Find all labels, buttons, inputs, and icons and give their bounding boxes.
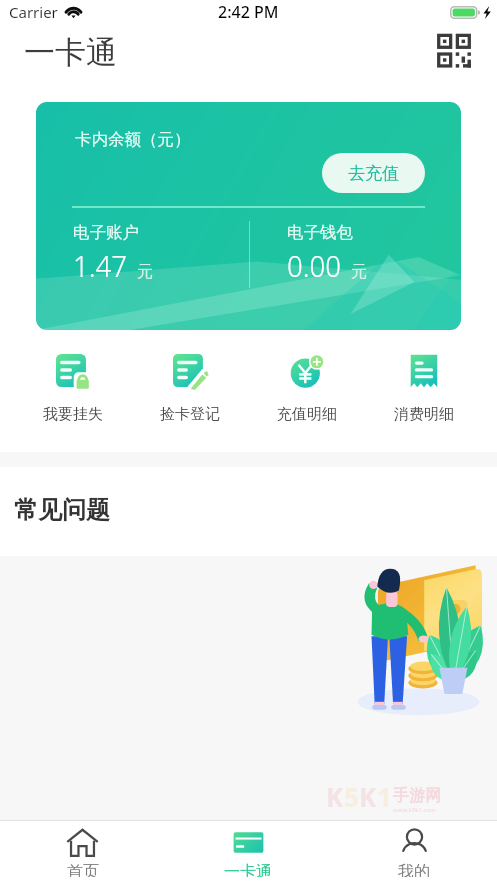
button[interactable]: 首页 xyxy=(0,821,165,883)
staticText: 去充值 xyxy=(348,163,399,184)
staticText: Carrier xyxy=(9,2,58,22)
staticText: 消费明细 xyxy=(394,405,454,424)
button[interactable]: 充值明细 xyxy=(263,354,351,424)
staticText: 元 xyxy=(351,262,367,282)
staticText: 充值明细 xyxy=(277,405,337,424)
staticText: 卡内余额（元） xyxy=(75,129,191,150)
button[interactable]: 卡内余额（元） xyxy=(36,102,461,330)
button[interactable]: 捡卡登记 xyxy=(146,354,234,424)
button[interactable]: 去充值 xyxy=(322,153,425,193)
button[interactable]: 我的 xyxy=(331,821,497,883)
staticText: 首页 xyxy=(67,862,99,877)
staticText: 电子账户 xyxy=(73,222,139,243)
staticText: 2:42 PM xyxy=(218,1,279,23)
staticText: 我的 xyxy=(398,862,430,877)
button[interactable]: 一卡通 xyxy=(165,821,331,883)
staticText: K xyxy=(326,779,344,814)
staticText: 电子钱包 xyxy=(287,222,353,243)
staticText: 元 xyxy=(137,262,153,282)
staticText: 5 xyxy=(344,779,359,814)
staticText: 我要挂失 xyxy=(43,405,103,424)
staticText: 捡卡登记 xyxy=(160,405,220,424)
staticText: 常见问题 xyxy=(14,495,110,525)
staticText: 0.00 xyxy=(287,245,341,286)
staticText: 一卡通 xyxy=(24,33,117,72)
button[interactable]: 消费明细 xyxy=(380,354,468,424)
button[interactable]: Scan QR code xyxy=(432,29,476,73)
staticText: 1.47 xyxy=(73,245,127,286)
staticText: www.k5k1.com xyxy=(393,806,436,814)
staticText: K xyxy=(359,779,377,814)
staticText: 手游网 xyxy=(393,786,441,806)
staticText: 一卡通 xyxy=(224,862,272,877)
staticText: 1 xyxy=(377,779,392,814)
button[interactable]: 我要挂失 xyxy=(29,354,117,424)
